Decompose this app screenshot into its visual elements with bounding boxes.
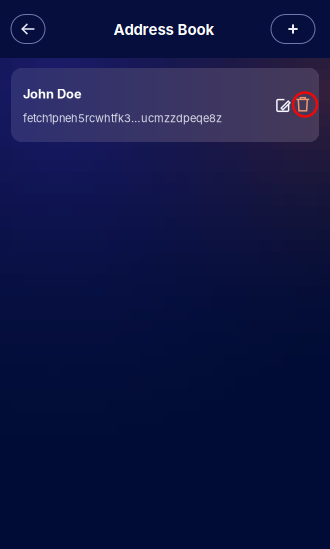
button[interactable]: Edit contact (270, 92, 296, 118)
button[interactable]: Delete contact (291, 90, 319, 118)
button[interactable]: Back (11, 14, 45, 43)
staticText: fetch1pneh5rcwhtfk3…ucmzzdpeqe8z (23, 112, 222, 125)
button[interactable]: John Doe (11, 68, 319, 142)
staticText: Address Book (113, 20, 214, 39)
staticText: John Doe (23, 86, 82, 102)
button[interactable]: Add contact (271, 14, 315, 43)
